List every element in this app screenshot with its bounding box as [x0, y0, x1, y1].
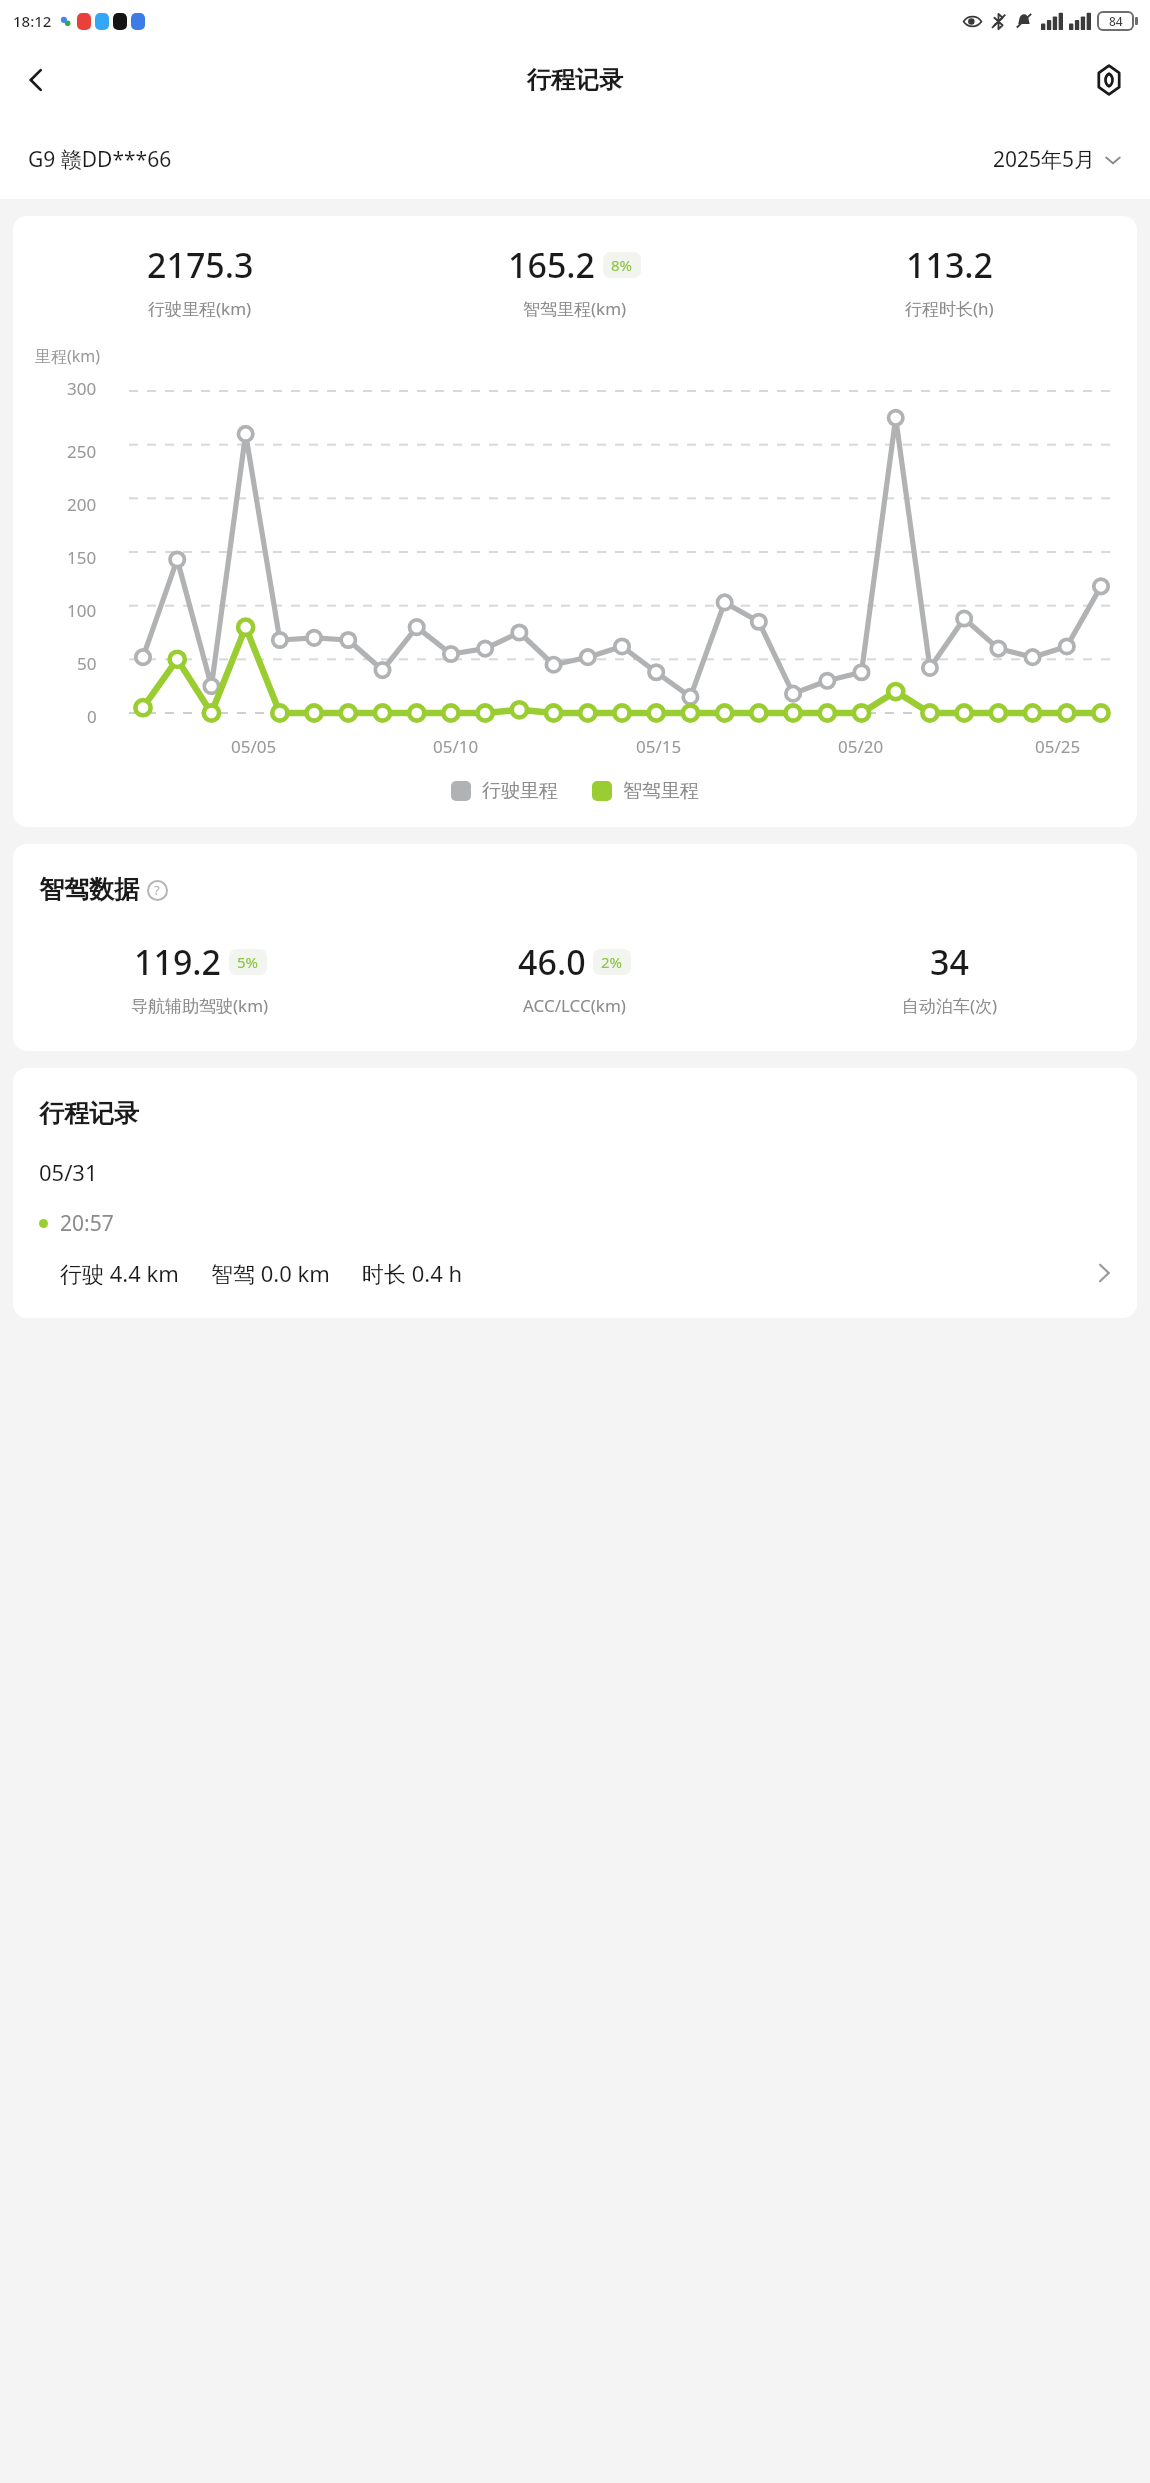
- staticText: 05/10: [433, 735, 479, 758]
- staticText: 行驶里程(km): [148, 297, 252, 320]
- staticText: 0: [87, 705, 97, 728]
- button[interactable]: 20:57: [13, 1205, 1137, 1298]
- staticText: 行程记录: [39, 1098, 139, 1129]
- staticText: 300: [67, 377, 97, 400]
- staticText: 里程(km): [35, 345, 101, 367]
- staticText: 智驾数据: [39, 874, 139, 905]
- staticText: 46.0: [518, 939, 586, 985]
- staticText: 自动泊车(次): [902, 994, 998, 1017]
- button[interactable]: 2025年5月: [993, 145, 1122, 174]
- staticText: 100: [67, 599, 97, 622]
- staticText: 20:57: [60, 1209, 114, 1238]
- staticText: 05/05: [231, 735, 277, 758]
- staticText: 2025年5月: [993, 145, 1096, 174]
- staticText: 行程时长(h): [905, 297, 994, 320]
- staticText: 行驶 4.4 km: [60, 1258, 179, 1288]
- staticText: 34: [930, 939, 969, 985]
- staticText: 05/15: [636, 735, 682, 758]
- button[interactable]: 设置: [1084, 55, 1134, 105]
- staticText: G9 赣DD***66: [28, 145, 172, 174]
- staticText: 113.2: [906, 242, 994, 288]
- staticText: ?: [154, 881, 160, 899]
- staticText: 智驾里程(km): [523, 297, 627, 320]
- staticText: 智驾里程: [623, 779, 699, 803]
- staticText: 时长 0.4 h: [362, 1258, 463, 1288]
- staticText: 84: [1109, 13, 1123, 29]
- staticText: 05/20: [838, 735, 884, 758]
- button[interactable]: 说明: [144, 877, 170, 903]
- staticText: 200: [67, 493, 97, 516]
- staticText: 2175.3: [147, 242, 254, 288]
- button[interactable]: 返回: [8, 52, 64, 108]
- staticText: 8%: [611, 255, 633, 275]
- staticText: 150: [67, 546, 97, 569]
- staticText: 2%: [601, 952, 623, 972]
- staticText: 05/25: [1035, 735, 1081, 758]
- staticText: 250: [67, 440, 97, 463]
- staticText: 智驾 0.0 km: [211, 1258, 330, 1288]
- staticText: 119.2: [134, 939, 222, 985]
- staticText: 18:12: [13, 11, 52, 31]
- staticText: 50: [77, 652, 97, 675]
- staticText: 05/31: [39, 1157, 98, 1187]
- staticText: ACC/LCC(km): [523, 994, 626, 1017]
- staticText: 165.2: [508, 242, 596, 288]
- staticText: 5%: [237, 952, 259, 972]
- staticText: 行程记录: [527, 65, 623, 95]
- staticText: 行驶里程: [482, 779, 558, 803]
- staticText: 导航辅助驾驶(km): [131, 994, 269, 1017]
